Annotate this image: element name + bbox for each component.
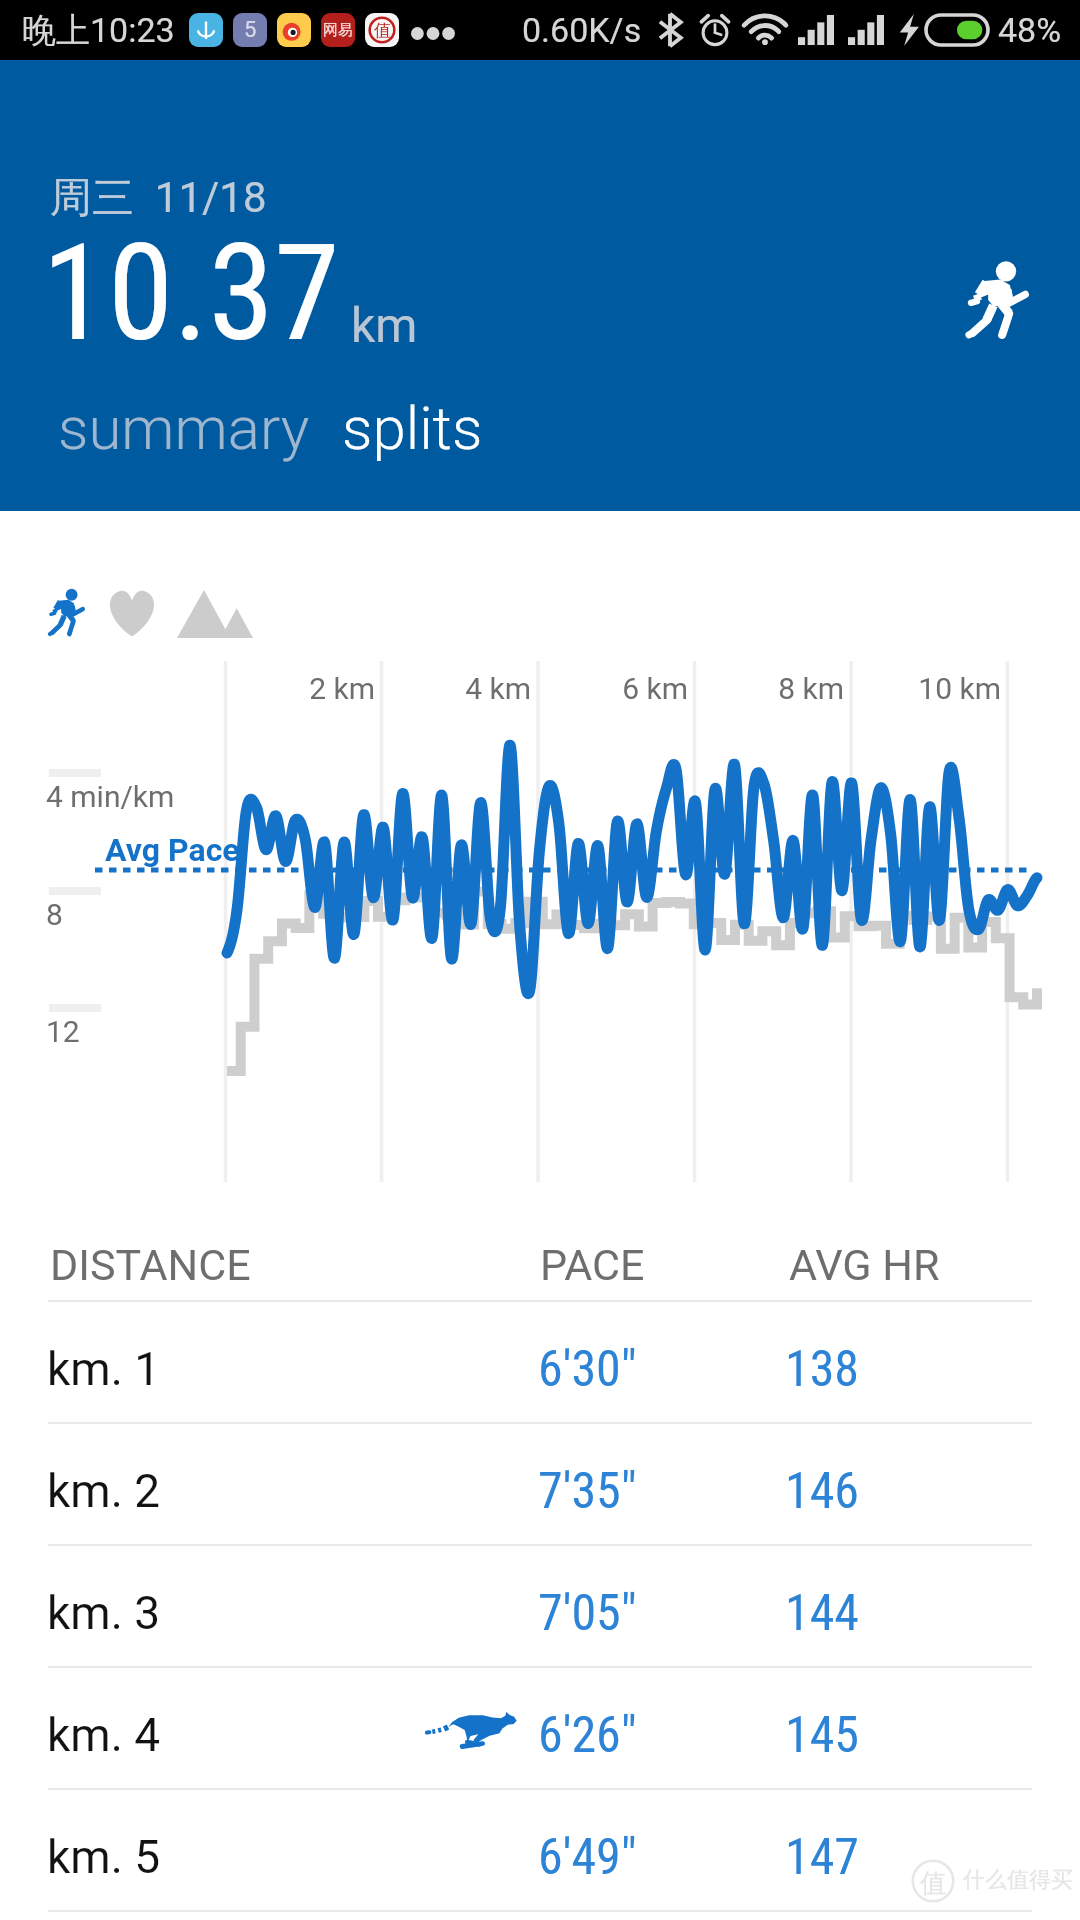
staticText: km. 4 <box>47 1708 161 1762</box>
staticText: 48% <box>998 10 1062 50</box>
staticText: 周三 11/18 <box>50 172 267 225</box>
staticText: 4 min/km <box>46 779 175 814</box>
button[interactable]: km. 5 <box>0 1790 1080 1910</box>
button[interactable]: summary <box>58 388 318 468</box>
staticText: 网易 <box>323 21 353 40</box>
staticText: 7′05″ <box>538 1584 637 1643</box>
button[interactable]: Heart rate chart <box>105 589 159 638</box>
staticText: summary <box>58 393 310 463</box>
staticText: 12 <box>46 1014 80 1049</box>
staticText: km. 5 <box>47 1830 161 1884</box>
button[interactable]: km. 4 <box>0 1668 1080 1788</box>
staticText: DISTANCE <box>50 1240 251 1290</box>
staticText: 4 km <box>465 671 531 706</box>
staticText: 10.37 <box>42 216 340 372</box>
staticText: km <box>351 297 418 353</box>
staticText: 值 <box>920 1867 946 1900</box>
button[interactable]: splits <box>338 388 487 468</box>
staticText: 6 km <box>622 671 688 706</box>
staticText: 8 <box>46 897 63 932</box>
button[interactable]: Pace chart <box>47 589 88 639</box>
button[interactable]: km. 3 <box>0 1546 1080 1666</box>
staticText: splits <box>342 393 483 463</box>
staticText: km. 1 <box>47 1342 161 1396</box>
staticText: 2 km <box>309 671 375 706</box>
staticText: km. 3 <box>47 1586 161 1640</box>
staticText: PACE <box>540 1240 645 1290</box>
staticText: 什么值得买 <box>963 1866 1073 1894</box>
staticText: 0.60K/s <box>522 10 642 50</box>
staticText: 7′35″ <box>538 1462 637 1521</box>
staticText: 6′26″ <box>538 1706 637 1765</box>
staticText: AVG HR <box>789 1240 940 1290</box>
staticText: 5 <box>244 17 257 43</box>
staticText: 147 <box>785 1828 860 1887</box>
button[interactable]: km. 1 <box>0 1302 1080 1422</box>
staticText: 10 km <box>918 671 1001 706</box>
staticText: 146 <box>785 1462 860 1521</box>
staticText: 值 <box>374 20 391 41</box>
button[interactable]: Elevation chart <box>177 589 253 638</box>
staticText: Avg Pace <box>105 831 240 869</box>
staticText: 晚上10:23 <box>22 9 175 52</box>
staticText: 138 <box>785 1340 860 1399</box>
staticText: 6′49″ <box>538 1828 637 1887</box>
button[interactable]: Running activity <box>964 262 1034 343</box>
staticText: 145 <box>785 1706 860 1765</box>
staticText: 8 km <box>778 671 844 706</box>
staticText: km. 2 <box>47 1464 161 1518</box>
staticText: 144 <box>785 1584 860 1643</box>
staticText: 6′30″ <box>538 1340 637 1399</box>
button[interactable]: km. 2 <box>0 1424 1080 1544</box>
